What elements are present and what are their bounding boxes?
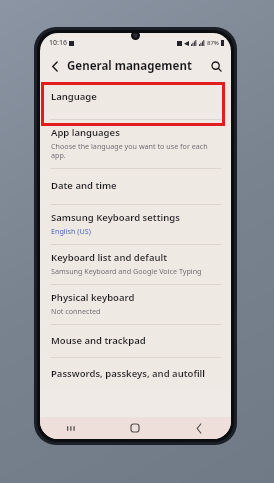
- button[interactable]: Recent apps: [40, 417, 103, 439]
- staticText: English (US): [51, 226, 91, 236]
- staticText: Keyboard list and default: [51, 251, 168, 264]
- staticText: 10:16: [49, 38, 67, 48]
- staticText: 87%: [207, 39, 219, 47]
- staticText: Date and time: [51, 179, 117, 192]
- staticText: Mouse and trackpad: [51, 334, 146, 347]
- button[interactable]: App languages: [40, 120, 231, 168]
- staticText: Choose the language you want to use for …: [51, 141, 220, 160]
- staticText: Not connected: [51, 306, 101, 316]
- button[interactable]: Back: [46, 57, 64, 75]
- button[interactable]: Passwords, passkeys, and autofill: [40, 358, 231, 390]
- button[interactable]: Back: [167, 417, 231, 439]
- staticText: Passwords, passkeys, and autofill: [51, 367, 205, 380]
- staticText: App languages: [51, 126, 120, 139]
- button[interactable]: Mouse and trackpad: [40, 325, 231, 357]
- staticText: Samsung Keyboard settings: [51, 211, 180, 224]
- button[interactable]: Search: [207, 57, 225, 75]
- staticText: General management: [67, 58, 207, 74]
- staticText: Physical keyboard: [51, 291, 135, 304]
- button[interactable]: Samsung Keyboard settings: [40, 205, 231, 244]
- button[interactable]: Language: [40, 82, 231, 113]
- button[interactable]: Keyboard list and default: [40, 245, 231, 284]
- staticText: Samsung Keyboard and Google Voice Typing: [51, 266, 202, 276]
- staticText: Language: [51, 90, 97, 103]
- button[interactable]: Home: [103, 417, 167, 439]
- button[interactable]: Physical keyboard: [40, 285, 231, 324]
- button[interactable]: Date and time: [40, 169, 231, 204]
